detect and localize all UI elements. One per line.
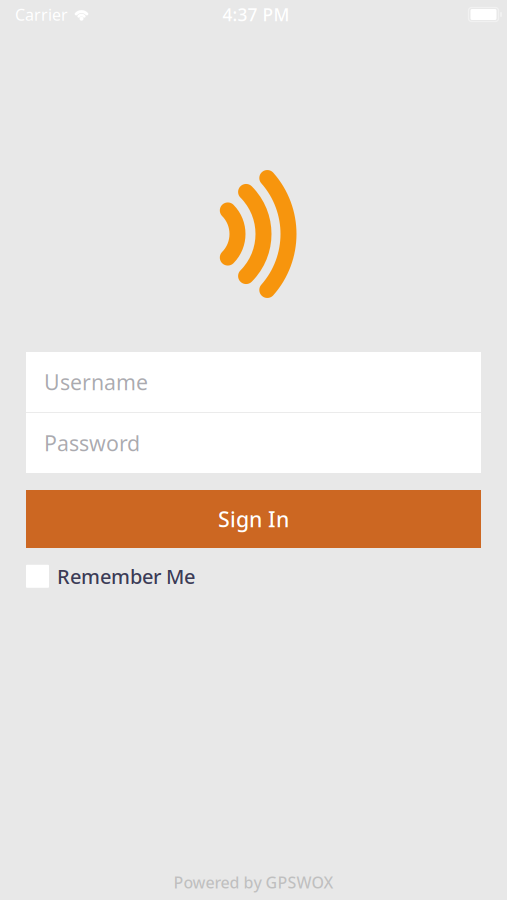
staticText: Remember Me <box>57 563 195 590</box>
staticText: Username <box>44 368 148 396</box>
staticText: Password <box>44 429 140 457</box>
button[interactable]: Sign In <box>26 490 481 548</box>
staticText: 4:37 PM <box>222 3 289 26</box>
button[interactable]: Password <box>26 413 481 473</box>
staticText: Powered by GPSWOX <box>173 872 333 893</box>
staticText: Sign In <box>218 505 289 533</box>
button[interactable]: Remember Me <box>26 563 481 590</box>
button[interactable]: Username <box>26 352 481 412</box>
staticText: Carrier <box>15 4 68 25</box>
